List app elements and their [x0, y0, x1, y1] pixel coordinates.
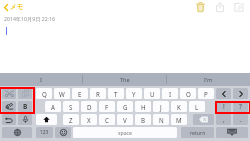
staticText: Q [42, 90, 47, 98]
button[interactable]: C [99, 114, 115, 125]
button[interactable]: Z [63, 114, 79, 125]
staticText: I [40, 76, 42, 83]
button[interactable]: Y [126, 88, 142, 99]
button[interactable]: F [99, 101, 115, 112]
button[interactable]: New note [231, 0, 246, 14]
button[interactable]: I [162, 88, 178, 99]
button[interactable]: Change keyboard [2, 127, 32, 138]
button[interactable]: , [216, 114, 231, 125]
button[interactable]: P [198, 88, 214, 99]
staticText: G [123, 103, 128, 111]
staticText: メモ [10, 3, 24, 11]
staticText: C [105, 116, 109, 124]
staticText: Z [69, 116, 73, 124]
staticText: 123 [40, 129, 49, 136]
staticText: M [176, 116, 182, 124]
button[interactable]: J [153, 101, 169, 112]
button[interactable]: Backspace [193, 114, 214, 125]
button[interactable]: D [81, 101, 97, 112]
staticText: F [105, 103, 109, 111]
button[interactable]: Share [212, 0, 227, 14]
button[interactable]: Delete note [193, 0, 208, 14]
staticText: . [240, 115, 242, 124]
button[interactable]: Hide keyboard [216, 127, 248, 138]
button[interactable]: U [144, 88, 160, 99]
staticText: U [150, 90, 155, 98]
button[interactable]: Next [233, 88, 248, 99]
staticText: J [160, 103, 162, 111]
button[interactable]: G [117, 101, 133, 112]
staticText: H [141, 103, 146, 111]
button[interactable]: Draw [2, 101, 16, 112]
staticText: B [141, 116, 146, 124]
staticText: 2014年10月9日 22:16 [4, 15, 55, 22]
staticText: L [195, 103, 199, 111]
staticText: , [223, 115, 225, 124]
staticText: return [190, 129, 206, 136]
button[interactable]: W [54, 88, 70, 99]
button[interactable]: ? [233, 101, 248, 112]
button[interactable]: L [189, 101, 205, 112]
staticText: D [87, 103, 92, 111]
button[interactable]: . [233, 114, 248, 125]
staticText: R [96, 90, 100, 98]
button[interactable]: S [63, 101, 79, 112]
button[interactable]: return [181, 127, 214, 138]
button[interactable]: メモ [1, 0, 27, 14]
staticText: space [118, 129, 133, 136]
button[interactable]: X [81, 114, 97, 125]
button[interactable]: R [90, 88, 106, 99]
button[interactable]: H [135, 101, 151, 112]
staticText: W [59, 90, 65, 98]
staticText: Y [132, 90, 136, 98]
staticText: I'm [204, 76, 213, 83]
staticText: I [169, 90, 172, 98]
button[interactable]: A [45, 101, 61, 112]
button[interactable]: O [180, 88, 196, 99]
staticText: ? [239, 102, 242, 111]
button[interactable]: Undo [2, 114, 16, 125]
button[interactable]: Cut [2, 88, 16, 99]
staticText: S [69, 103, 73, 111]
staticText: A [51, 103, 55, 111]
button[interactable]: I'm [167, 73, 250, 86]
button[interactable]: M [171, 114, 187, 125]
button[interactable]: K [171, 101, 187, 112]
staticText: K [177, 103, 181, 111]
button[interactable]: T [108, 88, 124, 99]
staticText: N [159, 116, 164, 124]
button[interactable]: Copy [18, 88, 32, 99]
button[interactable]: ! [216, 101, 231, 112]
button[interactable]: 123 [36, 127, 53, 138]
button[interactable]: Emoji [55, 127, 71, 138]
button[interactable]: Shift [36, 114, 57, 125]
button[interactable]: The [83, 73, 166, 86]
staticText: ! [223, 102, 225, 111]
button[interactable]: Dictate [18, 114, 32, 125]
staticText: T [114, 90, 118, 98]
button[interactable]: E [72, 88, 88, 99]
staticText: X [87, 116, 91, 124]
staticText: P [204, 90, 208, 98]
button[interactable]: Q [36, 88, 52, 99]
staticText: V [123, 116, 127, 124]
button[interactable]: V [117, 114, 133, 125]
button[interactable]: space [73, 127, 177, 138]
button[interactable]: B [135, 114, 151, 125]
staticText: O [186, 90, 191, 98]
staticText: E [78, 90, 82, 98]
staticText: B [23, 102, 28, 111]
button[interactable]: Previous [216, 88, 231, 99]
button[interactable]: N [153, 114, 169, 125]
staticText: The [120, 76, 130, 83]
button[interactable]: Bold [18, 101, 32, 112]
